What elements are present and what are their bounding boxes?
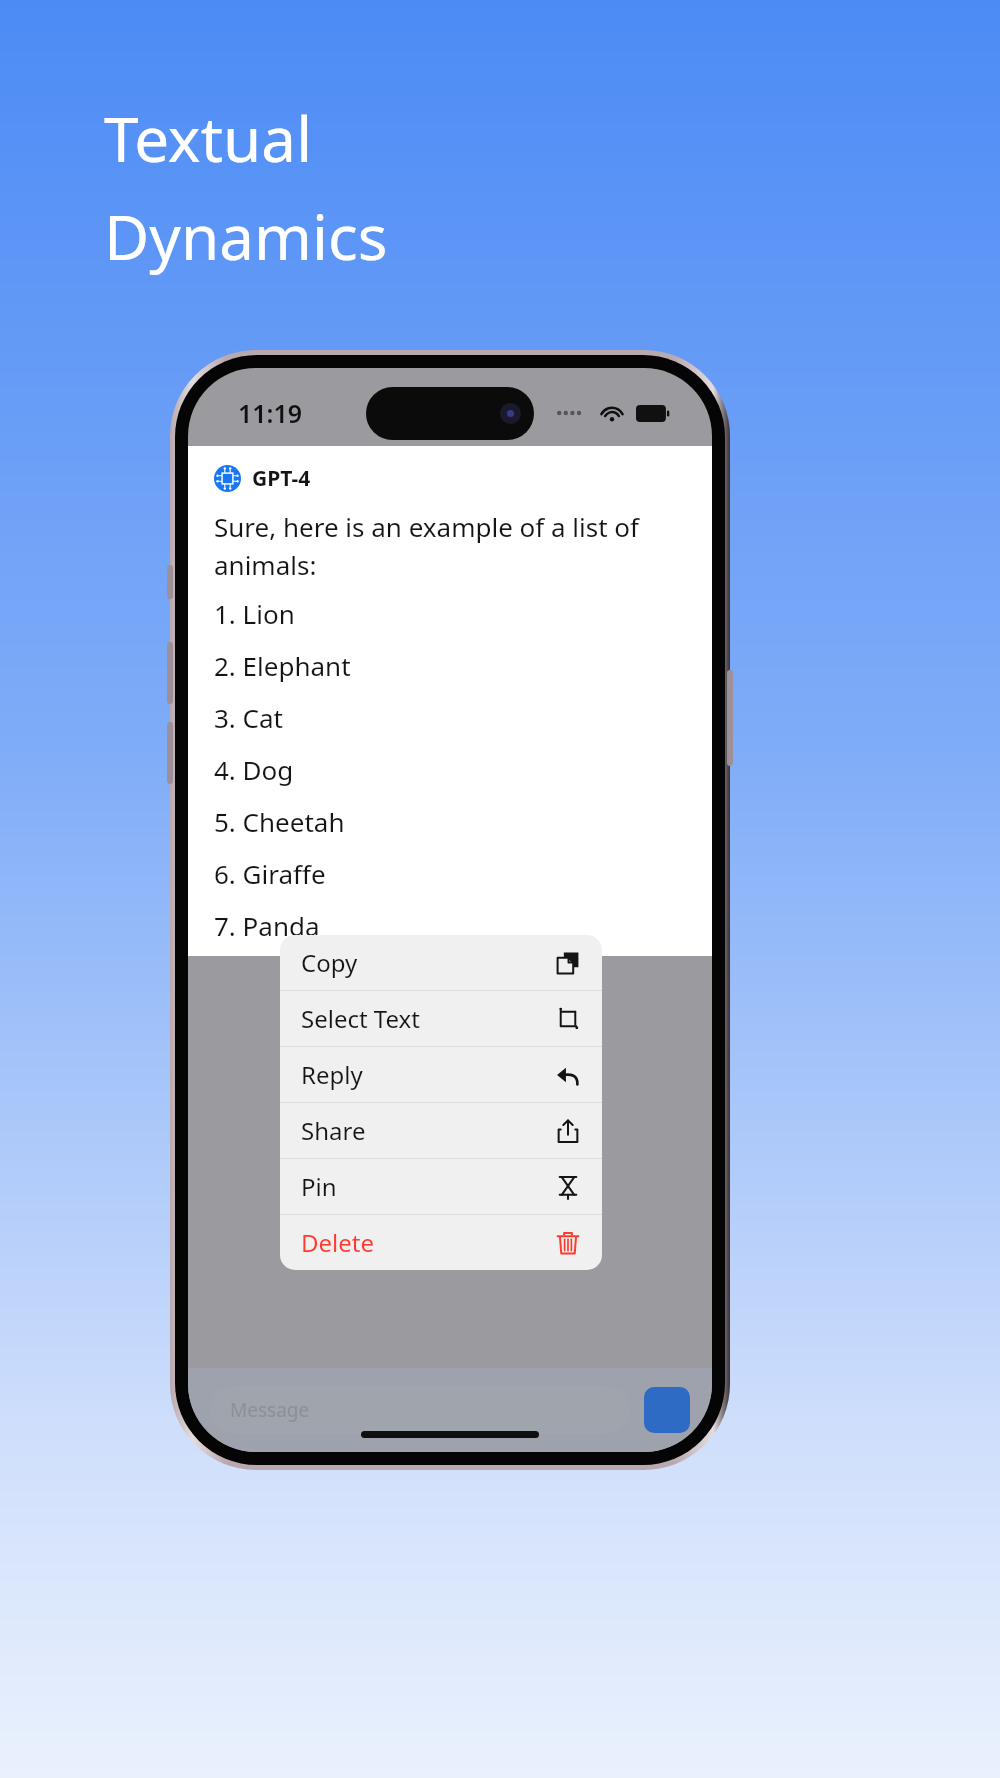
button[interactable]: Send xyxy=(644,1387,690,1433)
button[interactable]: Reply xyxy=(280,1047,602,1102)
staticText: GPT-4 xyxy=(252,464,311,493)
button[interactable]: Share xyxy=(280,1103,602,1158)
staticText: Pin xyxy=(301,1170,337,1203)
staticText: 6. Giraffe xyxy=(214,856,326,891)
button[interactable]: Message xyxy=(210,1386,630,1434)
staticText: 3. Cat xyxy=(214,700,284,735)
staticText: Textual xyxy=(104,96,313,180)
staticText: 11:19 xyxy=(238,396,303,430)
staticText: Select Text xyxy=(301,1002,420,1035)
staticText: Sure, here is an example of a list of an… xyxy=(214,509,640,582)
staticText: 7. Panda xyxy=(214,908,320,943)
button[interactable]: Select Text xyxy=(280,991,602,1046)
staticText: 4. Dog xyxy=(214,752,294,787)
staticText: 2. Elephant xyxy=(214,648,351,683)
staticText: Copy xyxy=(301,946,358,979)
staticText: Share xyxy=(301,1114,366,1147)
staticText: Dynamics xyxy=(104,194,388,278)
staticText: Delete xyxy=(301,1226,374,1259)
staticText: 5. Cheetah xyxy=(214,804,345,839)
button[interactable]: Pin xyxy=(280,1159,602,1214)
staticText: 1. Lion xyxy=(214,596,295,631)
staticText: Reply xyxy=(301,1058,363,1091)
button[interactable]: Copy xyxy=(280,935,602,990)
button[interactable]: Delete xyxy=(280,1215,602,1270)
staticText: Message xyxy=(230,1397,310,1423)
